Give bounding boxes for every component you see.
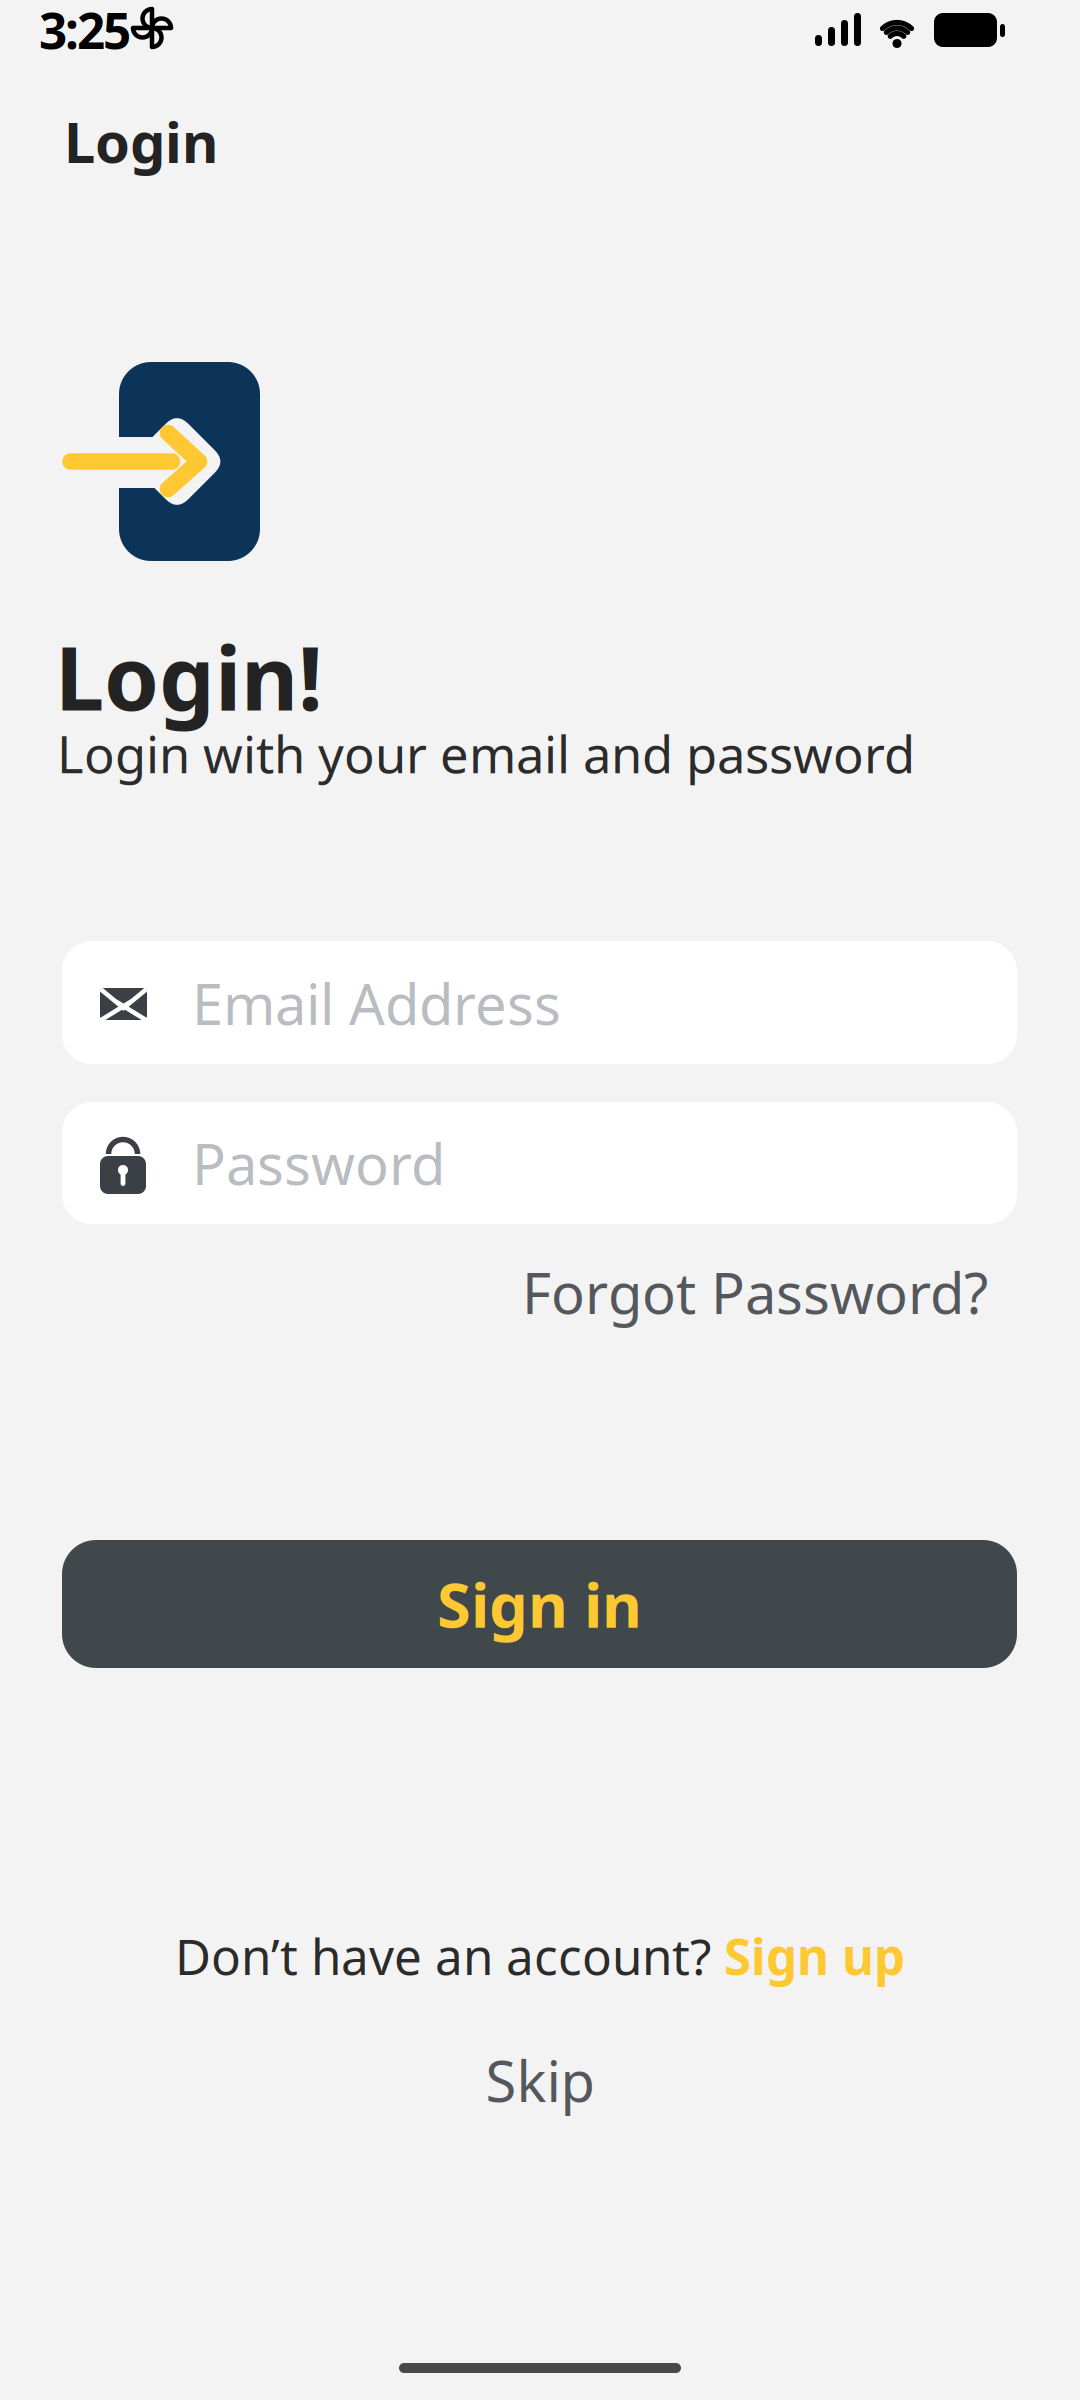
staticText: 3:25 (39, 0, 131, 62)
staticText: Forgot Password? (522, 1255, 988, 1329)
staticText: Sign up (724, 1923, 905, 1988)
staticText: Login (64, 104, 218, 178)
button[interactable]: Sign in (62, 1540, 1017, 1668)
staticText: Don’t have an account? (175, 1923, 724, 1988)
button[interactable]: Skip (485, 2043, 594, 2117)
staticText: Sign in (437, 1563, 642, 1645)
button[interactable]: Sign up (724, 1923, 905, 1988)
button[interactable]: Forgot Password? (522, 1255, 988, 1329)
staticText: Login with your email and password (57, 720, 915, 787)
button[interactable]: Password (62, 1102, 1017, 1224)
staticText: Skip (485, 2043, 594, 2117)
staticText: Email Address (192, 966, 561, 1040)
button[interactable]: Email Address (62, 941, 1017, 1064)
staticText: Login! (55, 618, 323, 735)
staticText: Password (192, 1126, 445, 1200)
